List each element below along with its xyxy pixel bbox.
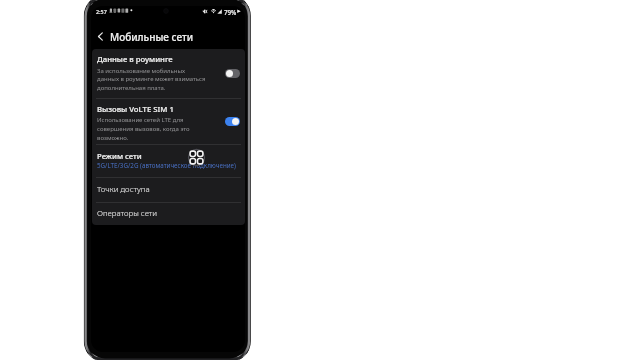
staticText: Мобильные сети bbox=[110, 30, 194, 44]
button[interactable]: Данные в роуминге bbox=[92, 49, 245, 98]
staticText: данных в роуминге может взиматься bbox=[97, 75, 206, 83]
staticText: Режим сети bbox=[97, 151, 142, 162]
button[interactable]: Assistive menu bbox=[187, 148, 206, 167]
staticText: 5G/LTE/3G/2G (автоматическое подключение… bbox=[97, 161, 236, 170]
button[interactable]: Switch on bbox=[225, 117, 240, 126]
button[interactable]: Операторы сети bbox=[92, 202, 245, 225]
button[interactable]: Back bbox=[92, 28, 108, 44]
button[interactable]: Switch off bbox=[225, 69, 240, 78]
staticText: дополнительная плата. bbox=[97, 84, 166, 92]
button[interactable]: Режим сети bbox=[92, 144, 245, 177]
staticText: Операторы сети bbox=[97, 208, 158, 219]
staticText: Данные в роуминге bbox=[97, 54, 173, 65]
staticText: совершения вызовов, когда это bbox=[97, 125, 190, 133]
staticText: За использование мобильных bbox=[97, 67, 186, 75]
staticText: 79% bbox=[224, 8, 237, 16]
staticText: Вызовы VoLTE SIM 1 bbox=[97, 104, 174, 115]
staticText: 2:57 bbox=[96, 8, 107, 15]
button[interactable]: Вызовы VoLTE SIM 1 bbox=[92, 98, 245, 145]
button[interactable]: Точки доступа bbox=[92, 177, 245, 201]
staticText: возможно. bbox=[97, 134, 129, 142]
staticText: Точки доступа bbox=[97, 184, 150, 195]
staticText: Использование сетей LTE для bbox=[97, 116, 184, 124]
